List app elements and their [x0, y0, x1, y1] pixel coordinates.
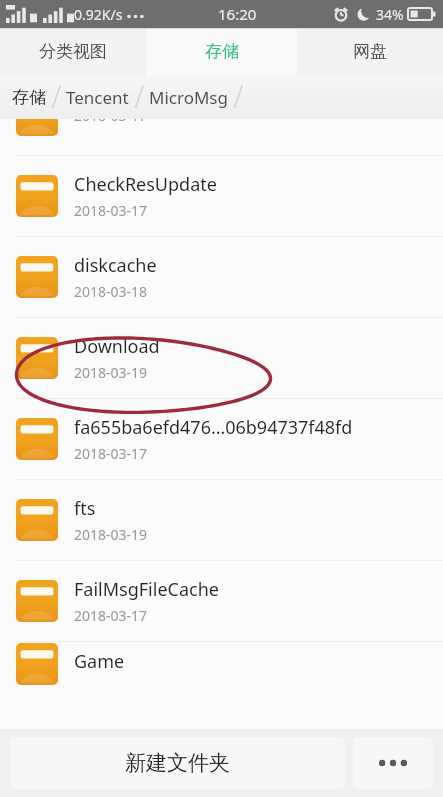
- button[interactable]: Game: [0, 642, 443, 685]
- staticText: Download: [74, 334, 160, 359]
- staticText: diskcache: [74, 253, 157, 278]
- staticText: MicroMsg: [149, 86, 228, 109]
- button[interactable]: Tencent: [64, 81, 131, 114]
- button[interactable]: 新建文件夹: [10, 737, 345, 789]
- staticText: 34%: [376, 5, 404, 24]
- staticText: 存储: [12, 87, 46, 108]
- staticText: Tencent: [66, 86, 129, 109]
- button[interactable]: Download: [0, 318, 443, 399]
- staticText: 网盘: [353, 41, 387, 62]
- button[interactable]: fa655ba6efd476…06b94737f48fd: [0, 399, 443, 480]
- button[interactable]: MicroMsg: [147, 81, 230, 114]
- staticText: 新建文件夹: [125, 750, 230, 776]
- button[interactable]: 2018-03-17: [0, 119, 443, 156]
- button[interactable]: FailMsgFileCache: [0, 561, 443, 642]
- button[interactable]: CheckResUpdate: [0, 156, 443, 237]
- staticText: fts: [74, 496, 96, 521]
- staticText: fa655ba6efd476…06b94737f48fd: [74, 415, 353, 440]
- staticText: CheckResUpdate: [74, 172, 217, 197]
- staticText: 2018-03-17: [74, 119, 148, 125]
- staticText: 0.92K/s: [74, 5, 123, 24]
- staticText: FailMsgFileCache: [74, 577, 219, 602]
- staticText: 2018-03-17: [74, 444, 148, 463]
- button[interactable]: diskcache: [0, 237, 443, 318]
- button[interactable]: 存储: [10, 82, 48, 113]
- button[interactable]: fts: [0, 480, 443, 561]
- staticText: 2018-03-18: [74, 282, 148, 301]
- staticText: 2018-03-19: [74, 363, 148, 382]
- button[interactable]: 网盘: [297, 28, 443, 75]
- staticText: 存储: [205, 41, 239, 62]
- button[interactable]: More options: [353, 737, 433, 789]
- staticText: 2018-03-17: [74, 201, 148, 220]
- staticText: 分类视图: [39, 41, 107, 62]
- staticText: 16:20: [218, 4, 257, 24]
- button[interactable]: 存储: [146, 28, 297, 75]
- staticText: 2018-03-19: [74, 525, 148, 544]
- button[interactable]: 分类视图: [0, 28, 146, 75]
- staticText: Game: [74, 649, 125, 674]
- staticText: 2018-03-17: [74, 606, 148, 625]
